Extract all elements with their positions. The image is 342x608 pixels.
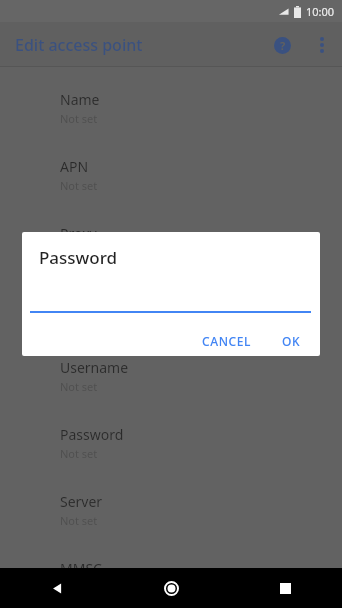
staticText: Not set: [60, 513, 98, 528]
staticText: OK: [282, 333, 301, 349]
staticText: Not set: [60, 245, 98, 260]
button[interactable]: Password: [0, 413, 342, 480]
staticText: Not set: [60, 580, 98, 595]
staticText: Proxy: [60, 224, 97, 243]
staticText: Edit access point: [15, 34, 143, 56]
staticText: APN: [60, 157, 89, 176]
button[interactable]: Username: [0, 346, 342, 413]
button[interactable]: Recent apps: [228, 568, 342, 608]
button[interactable]: Port: [0, 279, 342, 346]
staticText: Password: [60, 425, 124, 444]
staticText: 10:00: [306, 4, 335, 19]
button[interactable]: OK: [274, 327, 309, 355]
staticText: ?: [280, 38, 286, 53]
button[interactable]: Back: [0, 568, 114, 608]
button[interactable]: More options: [302, 25, 342, 65]
staticText: Password: [39, 246, 118, 269]
button[interactable]: Name: [0, 78, 342, 145]
staticText: Server: [60, 492, 103, 511]
staticText: Not set: [60, 312, 98, 327]
staticText: Not set: [60, 111, 98, 126]
button[interactable]: Server: [0, 480, 342, 547]
staticText: MMSC: [60, 559, 102, 578]
staticText: Username: [60, 358, 129, 377]
button[interactable]: Home: [114, 568, 228, 608]
staticText: Not set: [60, 446, 98, 461]
button[interactable]: MMSC: [0, 547, 342, 608]
staticText: Name: [60, 90, 100, 109]
button[interactable]: [30, 291, 311, 313]
staticText: CANCEL: [202, 333, 252, 349]
staticText: Not set: [60, 178, 98, 193]
button[interactable]: Proxy: [0, 212, 342, 279]
button[interactable]: CANCEL: [194, 327, 260, 355]
button[interactable]: Help: [262, 25, 302, 65]
staticText: Not set: [60, 379, 98, 394]
